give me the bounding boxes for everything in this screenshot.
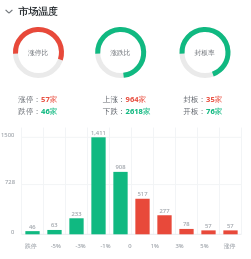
button[interactable]: 市场温度 collapse section [0,0,251,23]
